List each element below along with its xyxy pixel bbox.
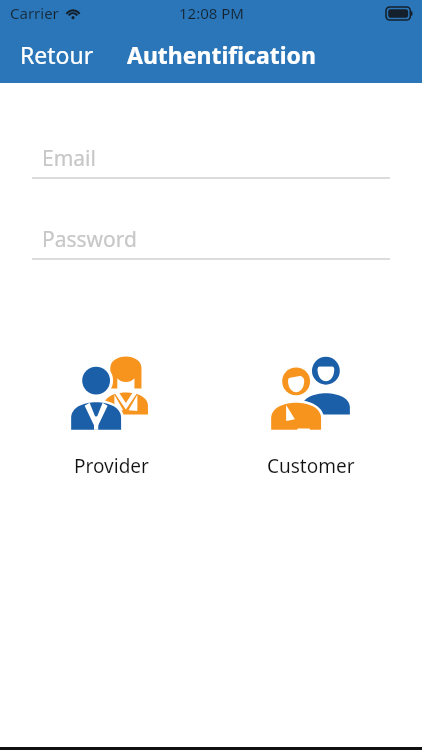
staticText: Provider [74, 453, 149, 479]
staticText: Customer [267, 453, 355, 479]
staticText: Carrier [10, 3, 59, 23]
button[interactable]: Retour [0, 31, 106, 78]
staticText: Retour [20, 39, 94, 70]
staticText: 12:08 PM [179, 3, 244, 23]
button[interactable]: Password [32, 224, 390, 260]
staticText: Authentification [127, 39, 316, 70]
button[interactable]: Provider [46, 345, 176, 483]
button[interactable]: Customer [246, 345, 376, 483]
staticText: Email [42, 144, 96, 173]
staticText: Password [42, 225, 137, 254]
button[interactable]: Email [32, 143, 390, 179]
